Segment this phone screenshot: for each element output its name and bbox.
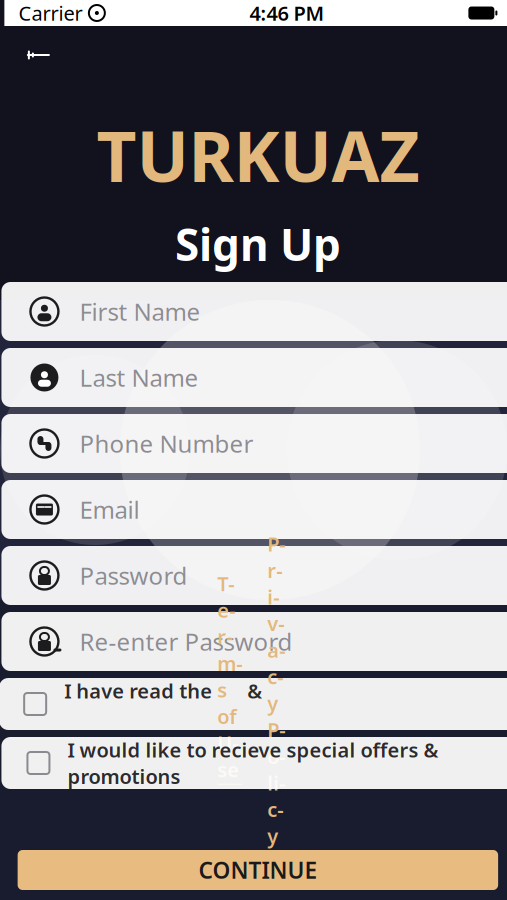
button[interactable]: Back	[12, 33, 64, 77]
staticText: Password	[79, 560, 187, 591]
staticText: Email	[79, 494, 139, 525]
button[interactable]: Last Name	[1, 348, 507, 407]
button[interactable]: Email	[1, 480, 507, 539]
staticText: Sign Up	[175, 215, 341, 273]
staticText: I have read the	[64, 677, 217, 704]
staticText: &	[242, 677, 267, 704]
staticText: 4:46 PM	[249, 0, 324, 26]
staticText: Carrier	[18, 0, 82, 26]
staticText: I would like to recieve special offers &…	[67, 736, 438, 789]
button[interactable]: Password	[1, 546, 507, 605]
button[interactable]: CONTINUE	[18, 850, 498, 890]
staticText: Terms of Use	[217, 570, 242, 783]
button[interactable]: I would like to recieve special offers &…	[1, 737, 507, 789]
button[interactable]: Phone Number	[1, 414, 507, 473]
staticText: First Name	[79, 296, 200, 327]
button[interactable]: First Name	[1, 282, 507, 341]
staticText: Last Name	[79, 362, 198, 393]
staticText: Privacy Policy	[267, 530, 285, 849]
button[interactable]: Re-enter Password	[1, 612, 507, 671]
staticText: Phone Number	[79, 428, 253, 459]
staticText: TURKUAZ	[96, 109, 419, 201]
staticText: Re-enter Password	[79, 626, 292, 657]
staticText: CONTINUE	[198, 855, 317, 885]
button[interactable]: I have read the	[0, 678, 507, 730]
